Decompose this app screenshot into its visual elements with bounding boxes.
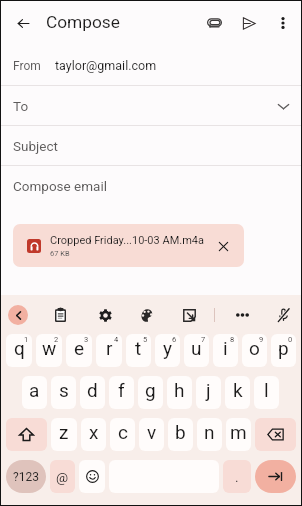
button[interactable]: a [22, 376, 47, 409]
staticText: 8 [230, 335, 235, 344]
button[interactable]: f [109, 376, 134, 409]
button[interactable]: l [254, 376, 279, 409]
staticText: d [87, 379, 98, 401]
staticText: 6 [172, 335, 177, 344]
staticText: g [145, 379, 156, 401]
staticText: Compose [46, 12, 120, 32]
button[interactable]: i [213, 334, 238, 367]
button[interactable]: x [81, 418, 106, 451]
staticText: k [233, 379, 243, 401]
button[interactable]: j [196, 376, 221, 409]
button[interactable]: From [1, 46, 301, 85]
button[interactable]: c [110, 418, 135, 451]
staticText: l [264, 379, 269, 401]
button[interactable]: z [51, 418, 77, 451]
staticText: 2 [54, 335, 59, 344]
button[interactable]: h [167, 376, 192, 409]
staticText: b [175, 421, 186, 443]
button[interactable]: Attach file [201, 10, 227, 36]
staticText: a [29, 379, 40, 401]
button[interactable]: n [197, 418, 222, 451]
staticText: taylor@gmail.com [55, 58, 157, 73]
staticText: j [206, 379, 211, 401]
button[interactable]: Shift [6, 418, 47, 451]
staticText: m [230, 421, 247, 443]
staticText: 5 [143, 335, 148, 344]
staticText: x [89, 421, 99, 443]
button[interactable]: Cropped Friday...10-03 AM.m4a [13, 224, 244, 267]
button[interactable]: e [66, 334, 92, 367]
button[interactable]: u [184, 334, 209, 367]
staticText: f [118, 379, 125, 401]
button[interactable]: Voice input off [272, 304, 294, 326]
button[interactable]: t [126, 334, 151, 367]
staticText: n [204, 421, 215, 443]
button[interactable]: Expand recipients [272, 95, 294, 117]
staticText: ?123 [13, 470, 39, 484]
staticText: 7 [201, 335, 206, 344]
button[interactable]: Compose email [1, 166, 301, 205]
staticText: u [191, 337, 202, 359]
staticText: r [106, 337, 113, 359]
staticText: o [249, 337, 260, 359]
button[interactable]: Emoji [79, 460, 105, 493]
button[interactable]: g [138, 376, 163, 409]
button[interactable]: Back [10, 10, 36, 36]
button[interactable]: d [80, 376, 105, 409]
staticText: c [118, 421, 128, 443]
staticText: h [174, 379, 185, 401]
button[interactable]: Backspace [255, 418, 296, 451]
staticText: t [135, 337, 142, 359]
staticText: . [235, 469, 239, 485]
button[interactable]: More [231, 304, 253, 326]
button[interactable]: v [139, 418, 164, 451]
staticText: i [223, 337, 228, 359]
staticText: Compose email [13, 178, 107, 194]
button[interactable]: Stickers [178, 304, 200, 326]
button[interactable]: ?123 [6, 460, 46, 493]
button[interactable]: Clipboard [49, 304, 71, 326]
staticText: w [42, 337, 57, 359]
button[interactable]: @ [50, 460, 75, 493]
staticText: @ [56, 469, 69, 485]
staticText: z [59, 421, 69, 443]
button[interactable]: Enter [255, 460, 296, 493]
button[interactable]: Remove attachment [212, 235, 234, 257]
button[interactable]: b [168, 418, 193, 451]
button[interactable]: k [225, 376, 250, 409]
button[interactable]: Send [236, 10, 262, 36]
staticText: e [74, 337, 85, 359]
staticText: 67 KB [50, 249, 70, 258]
staticText: From [13, 59, 41, 73]
staticText: To [13, 98, 29, 114]
button[interactable]: Subject [1, 126, 301, 165]
staticText: 3 [84, 335, 89, 344]
button[interactable]: p [271, 334, 296, 367]
staticText: p [278, 337, 289, 359]
staticText: 0 [288, 335, 293, 344]
button[interactable]: q [6, 334, 32, 367]
staticText: q [14, 337, 25, 359]
button[interactable]: Previous [8, 305, 28, 325]
staticText: s [59, 379, 69, 401]
staticText: Cropped Friday...10-03 AM.m4a [50, 234, 204, 247]
button[interactable]: o [242, 334, 267, 367]
staticText: Subject [13, 138, 58, 154]
button[interactable]: Theme [136, 304, 158, 326]
staticText: 9 [259, 335, 264, 344]
button[interactable]: To [1, 86, 301, 125]
staticText: 4 [114, 335, 119, 344]
staticText: v [147, 421, 157, 443]
staticText: 1 [24, 335, 29, 344]
button[interactable]: y [155, 334, 180, 367]
button[interactable]: More options [270, 10, 296, 36]
button[interactable]: . [223, 460, 251, 493]
button[interactable]: m [226, 418, 251, 451]
button[interactable]: Settings [94, 304, 116, 326]
button[interactable]: r [96, 334, 122, 367]
button[interactable]: s [51, 376, 76, 409]
button[interactable]: w [36, 334, 62, 367]
staticText: y [163, 337, 172, 359]
